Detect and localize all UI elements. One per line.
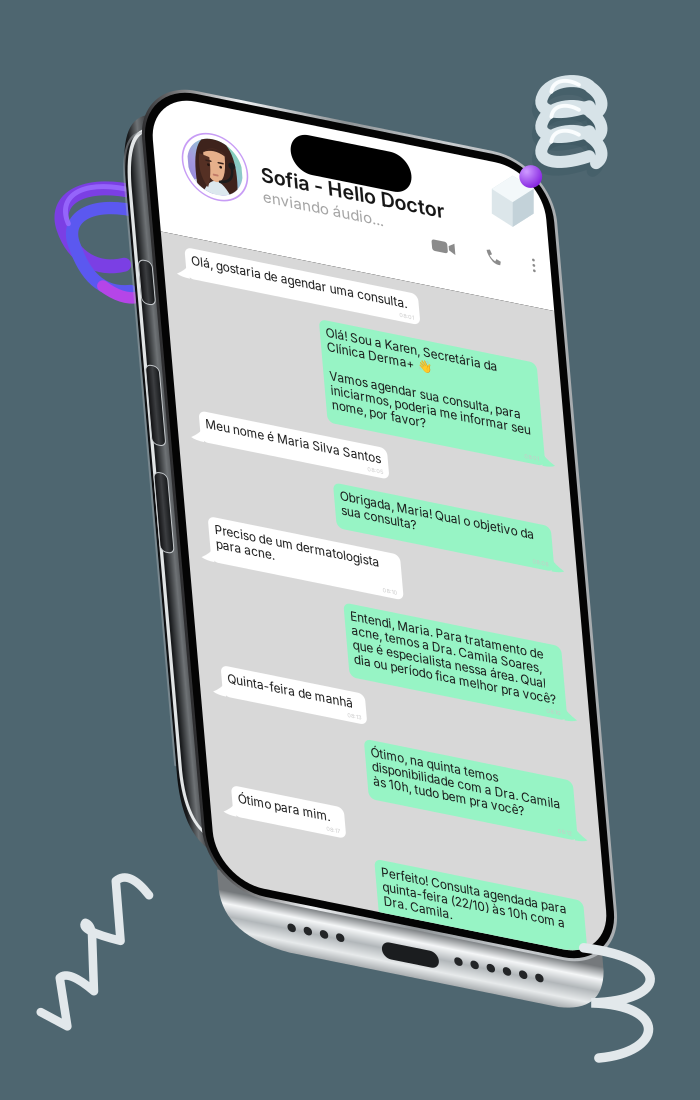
staticText: 08:13 [161,603,175,610]
button[interactable]: Perfeito! Consulta agendada para quinta-… [24,748,399,809]
staticText: Olá! Sou a Karen, Secretária da Clínica … [173,213,377,300]
staticText: Entendi, Maria. Para tratamento de acne,… [173,498,379,556]
staticText: 08:12 [369,678,383,685]
staticText: Preciso de um dermatologista para acne. [40,437,208,466]
button[interactable]: Ótimo, na quinta temos disponibilidade c… [24,628,399,688]
staticText: enviando áudio... [120,85,243,103]
button[interactable]: Meu nome é Maria Silva Santos [24,326,399,357]
staticText: Obrigada, Maria! Qual o objetivo da sua … [173,377,371,406]
button[interactable]: Quinta-feira de manhã [24,582,399,613]
staticText: Olá, gostaria de agendar uma consulta. [40,167,260,181]
button[interactable]: Entendi, Maria. Para tratamento de acne,… [24,493,399,568]
staticText: Quinta-feira de manhã [40,587,168,601]
staticText: 08:08 [367,408,383,415]
staticText: 08:10 [368,558,383,564]
button[interactable]: Obrigada, Maria! Qual o objetivo da sua … [24,372,399,418]
button[interactable]: Ótimo para mim. [24,703,399,734]
staticText: Meu nome é Maria Silva Santos [40,331,219,346]
button[interactable]: Olá! Sou a Karen, Secretária da Clínica … [24,208,399,312]
staticText: Ótimo, na quinta temos disponibilidade c… [182,633,374,676]
staticText: 08:01 [368,302,383,309]
button[interactable]: Preciso de um dermatologista para acne. [24,432,399,478]
button[interactable]: Olá, gostaria de agendar uma consulta. [24,162,399,193]
button[interactable]: Video call [287,99,318,118]
staticText: Perfeito! Consulta agendada para quinta-… [182,753,371,797]
staticText: 08:17 [369,799,383,806]
